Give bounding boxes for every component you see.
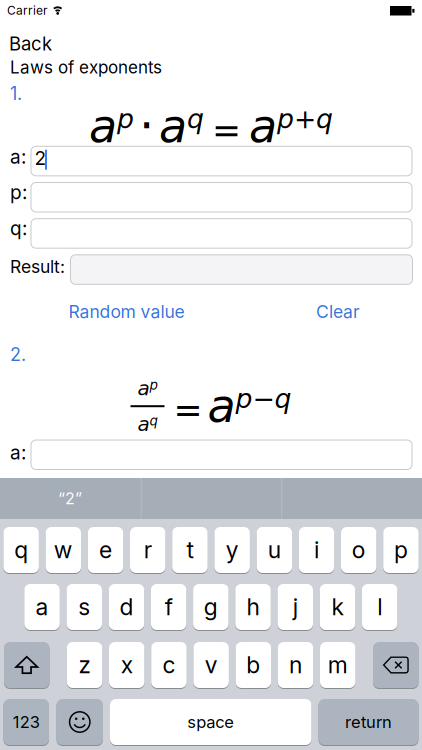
button[interactable]: u [257,527,292,573]
staticText: “2” [58,489,82,508]
staticText: d [119,593,133,621]
button[interactable]: k [320,584,355,630]
staticText: space [187,712,234,732]
staticText: f [165,593,173,621]
staticText: q: [10,217,27,240]
staticText: Carrier [7,3,48,17]
button[interactable]: Delete [373,642,418,688]
staticText: e [99,536,112,564]
button[interactable]: m [320,642,355,688]
button[interactable]: g [193,584,229,630]
button[interactable]: h [235,584,271,630]
staticText: return [345,712,392,732]
staticText: 2 [34,146,46,169]
button[interactable]: “2” [0,478,140,519]
button[interactable]: a [24,584,60,630]
button[interactable]: s [66,584,102,630]
staticText: r [144,536,152,564]
staticText: g [204,593,218,621]
staticText: a: [10,145,26,168]
staticText: Back [9,32,52,55]
button[interactable]: a text field [31,440,412,469]
staticText: ap · aq = ap+q [89,98,333,153]
staticText: 1. [10,82,22,104]
button[interactable]: Clear [316,301,360,322]
button[interactable]: r [130,527,165,573]
staticText: 123 [13,712,40,732]
staticText: k [331,593,343,621]
button[interactable]: return [318,699,418,745]
staticText: o [352,536,366,564]
button[interactable]: e [88,527,123,573]
staticText: u [268,536,281,564]
staticText: Random value [68,301,184,322]
staticText: w [54,536,73,564]
button[interactable]: x [109,642,144,688]
staticText: n [289,651,302,679]
button[interactable]: j [277,584,313,630]
button[interactable]: a text field [31,146,412,176]
button[interactable]: y [214,527,250,573]
staticText: p [394,536,408,564]
staticText: b [246,651,260,679]
button[interactable]: d [109,584,144,630]
staticText: q [14,536,28,564]
staticText: aq [137,413,157,435]
button[interactable]: o [341,527,376,573]
staticText: l [377,593,382,621]
staticText: t [186,536,193,564]
button[interactable]: Emoji [56,699,103,745]
staticText: j [293,593,298,621]
staticText: Clear [316,301,360,322]
staticText: x [121,651,133,679]
button[interactable]: c [151,642,187,688]
button[interactable]: Shift [4,642,49,688]
staticText: m [328,651,348,679]
button[interactable]: p [383,527,419,573]
button[interactable]: t [172,527,208,573]
button[interactable]: space [110,699,311,745]
staticText: ap [137,377,157,400]
button[interactable]: Random value [68,301,184,322]
button[interactable]: 123 [3,699,49,745]
button[interactable]: q text field [31,219,412,248]
staticText: h [247,593,260,621]
staticText: p: [10,181,27,204]
button[interactable]: b [236,642,271,688]
staticText: y [226,536,239,564]
staticText: 2. [10,343,26,365]
button[interactable]: q [3,527,39,573]
button[interactable]: Back [9,32,52,55]
button[interactable]: z [67,642,102,688]
button[interactable]: i [299,527,334,573]
button[interactable]: p text field [31,182,412,212]
button[interactable]: l [362,584,397,630]
button[interactable]: n [278,642,313,688]
button[interactable]: f [151,584,186,630]
staticText: a: [10,441,26,464]
staticText: a [35,593,48,621]
button[interactable]: v [193,642,229,688]
staticText: = ap−q [173,380,291,432]
staticText: Laws of exponents [10,57,162,78]
staticText: v [205,651,218,679]
staticText: i [314,536,319,564]
staticText: Result: [10,256,65,277]
staticText: c [162,651,175,679]
staticText: s [78,593,90,621]
staticText: z [78,651,90,679]
button[interactable]: w [46,527,81,573]
